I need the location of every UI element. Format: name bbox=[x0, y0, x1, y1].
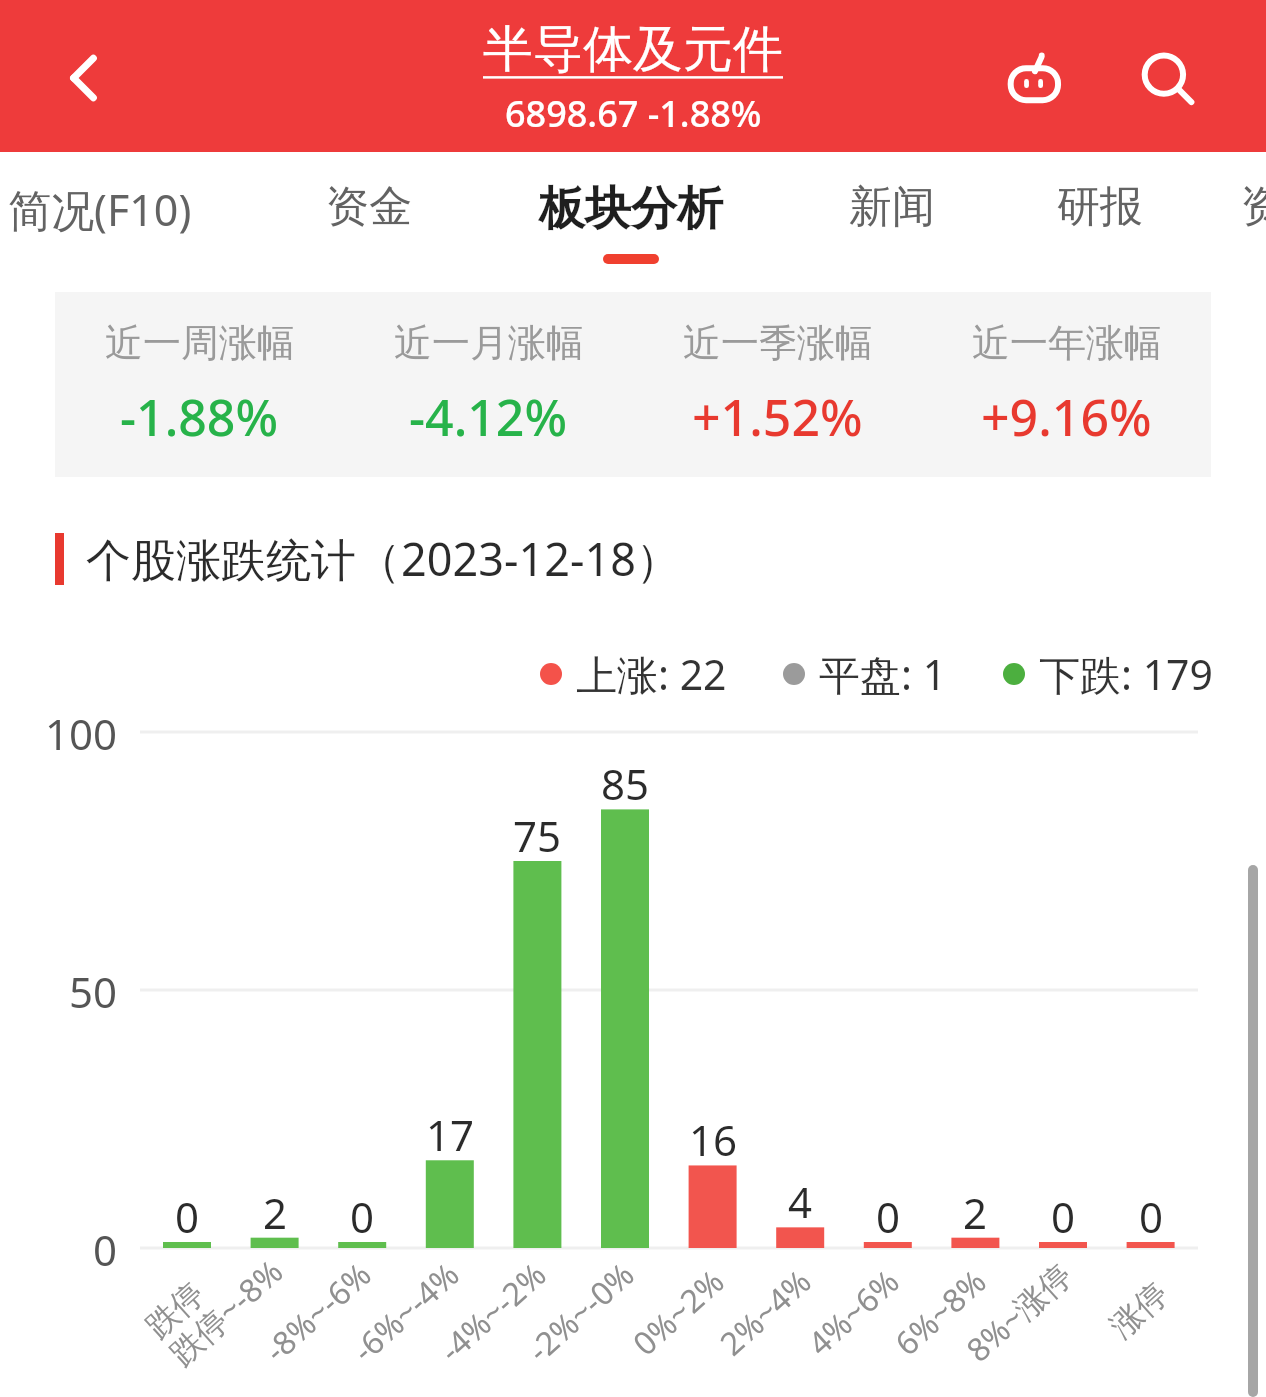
button[interactable]: 上涨: 22 bbox=[540, 646, 727, 702]
staticText: 0 bbox=[175, 1188, 200, 1245]
button[interactable]: 近一年涨幅 bbox=[922, 292, 1211, 477]
staticText: 新闻 bbox=[849, 180, 935, 234]
staticText: 4 bbox=[788, 1173, 813, 1230]
staticText: +9.16% bbox=[981, 383, 1152, 451]
staticText: 6%~8% bbox=[885, 1259, 996, 1365]
staticText: 0 bbox=[350, 1188, 375, 1245]
staticText: 6898.67 -1.88% bbox=[505, 89, 762, 138]
staticText: 0%~2% bbox=[623, 1259, 734, 1365]
button[interactable]: 板块分析 bbox=[515, 152, 747, 292]
button[interactable]: 资金 bbox=[302, 152, 436, 292]
staticText: 50 bbox=[69, 963, 118, 1020]
staticText: -4%~-2% bbox=[430, 1252, 555, 1371]
button[interactable]: 近一季涨幅 bbox=[633, 292, 922, 477]
button[interactable]: Back bbox=[46, 40, 122, 116]
staticText: 75 bbox=[513, 807, 562, 864]
staticText: 半导体及元件 bbox=[483, 18, 783, 81]
staticText: -4.12% bbox=[409, 383, 568, 451]
button[interactable]: 下跌: 179 bbox=[1003, 646, 1214, 702]
staticText: 0 bbox=[93, 1221, 118, 1278]
staticText: 0 bbox=[1139, 1188, 1164, 1245]
staticText: 85 bbox=[601, 755, 650, 812]
staticText: 近一季涨幅 bbox=[683, 319, 873, 367]
staticText: +1.52% bbox=[692, 383, 863, 451]
staticText: 下跌: 179 bbox=[1039, 646, 1214, 702]
staticText: 板块分析 bbox=[539, 180, 723, 238]
button[interactable]: 研报 bbox=[1033, 152, 1167, 292]
staticText: 8%~涨停 bbox=[957, 1253, 1081, 1371]
button[interactable]: 简况(F10) bbox=[0, 152, 227, 292]
staticText: 近一周涨幅 bbox=[105, 319, 295, 367]
button[interactable]: 平盘: 1 bbox=[783, 646, 947, 702]
staticText: 资 bbox=[1241, 180, 1266, 234]
button[interactable]: 近一月涨幅 bbox=[344, 292, 633, 477]
button[interactable]: Search bbox=[1128, 40, 1210, 122]
staticText: 16 bbox=[689, 1111, 738, 1168]
staticText: 研报 bbox=[1057, 180, 1143, 234]
button[interactable]: 近一周涨幅 bbox=[55, 292, 344, 477]
staticText: 100 bbox=[45, 705, 118, 762]
staticText: 资金 bbox=[326, 180, 412, 234]
button[interactable]: 资 bbox=[1217, 152, 1266, 292]
staticText: 近一月涨幅 bbox=[394, 319, 584, 367]
staticText: -1.88% bbox=[120, 383, 279, 451]
staticText: -2%~-0% bbox=[518, 1252, 643, 1371]
staticText: 2 bbox=[263, 1184, 288, 1241]
staticText: 跌停 bbox=[138, 1274, 212, 1346]
staticText: 涨停 bbox=[1102, 1274, 1176, 1346]
staticText: 个股涨跌统计（2023-12-18） bbox=[86, 528, 681, 589]
staticText: 上涨: 22 bbox=[576, 646, 727, 702]
staticText: 17 bbox=[426, 1106, 475, 1163]
staticText: 平盘: 1 bbox=[819, 646, 947, 702]
button[interactable]: AI assistant bbox=[992, 38, 1078, 124]
staticText: 0 bbox=[876, 1188, 901, 1245]
staticText: 2%~4% bbox=[710, 1259, 821, 1365]
staticText: 2 bbox=[963, 1184, 988, 1241]
button[interactable]: 新闻 bbox=[825, 152, 959, 292]
staticText: 简况(F10) bbox=[8, 180, 192, 239]
staticText: 跌停~-8% bbox=[160, 1249, 292, 1374]
staticText: -6%~-4% bbox=[343, 1252, 468, 1371]
staticText: 4%~6% bbox=[798, 1259, 909, 1365]
staticText: 近一年涨幅 bbox=[972, 319, 1162, 367]
staticText: -8%~-6% bbox=[255, 1252, 380, 1371]
staticText: 0 bbox=[1051, 1188, 1076, 1245]
